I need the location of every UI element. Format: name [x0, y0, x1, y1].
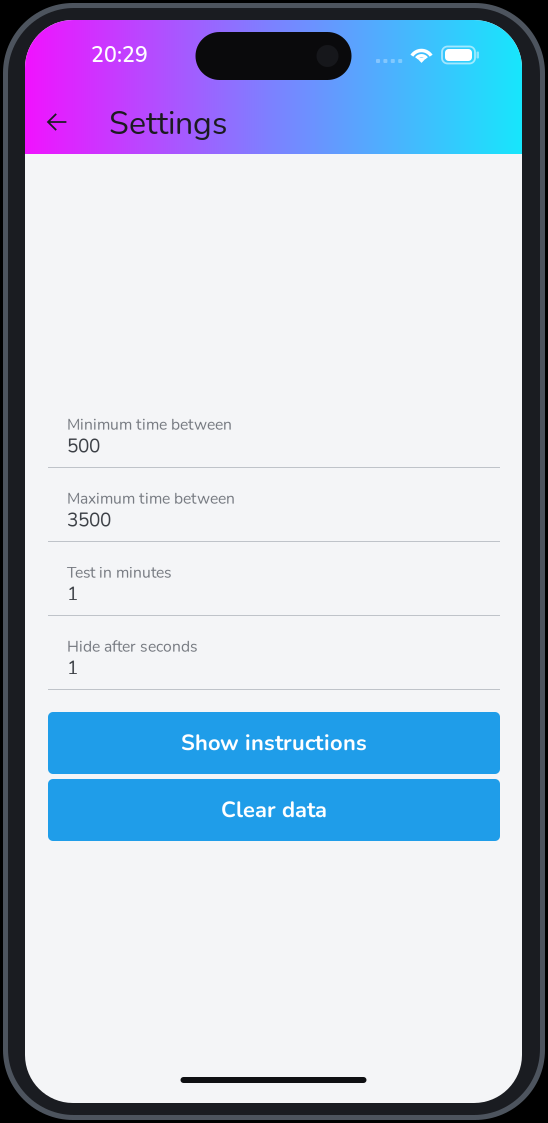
staticText: Maximum time between	[67, 488, 235, 509]
button[interactable]: Clear data	[48, 779, 500, 841]
staticText: 20:29	[91, 40, 148, 70]
button[interactable]: Show instructions	[48, 712, 500, 774]
staticText: Show instructions	[181, 728, 367, 758]
staticText: 500	[67, 433, 100, 459]
staticText: 3500	[67, 507, 111, 533]
staticText: Test in minutes	[67, 562, 172, 583]
staticText: 1	[67, 655, 78, 681]
button[interactable]: Back	[34, 99, 80, 145]
staticText: Clear data	[221, 795, 327, 825]
staticText: Hide after seconds	[67, 636, 198, 657]
staticText: Minimum time between	[67, 414, 232, 435]
staticText: 1	[67, 581, 78, 607]
staticText: Settings	[109, 102, 227, 145]
